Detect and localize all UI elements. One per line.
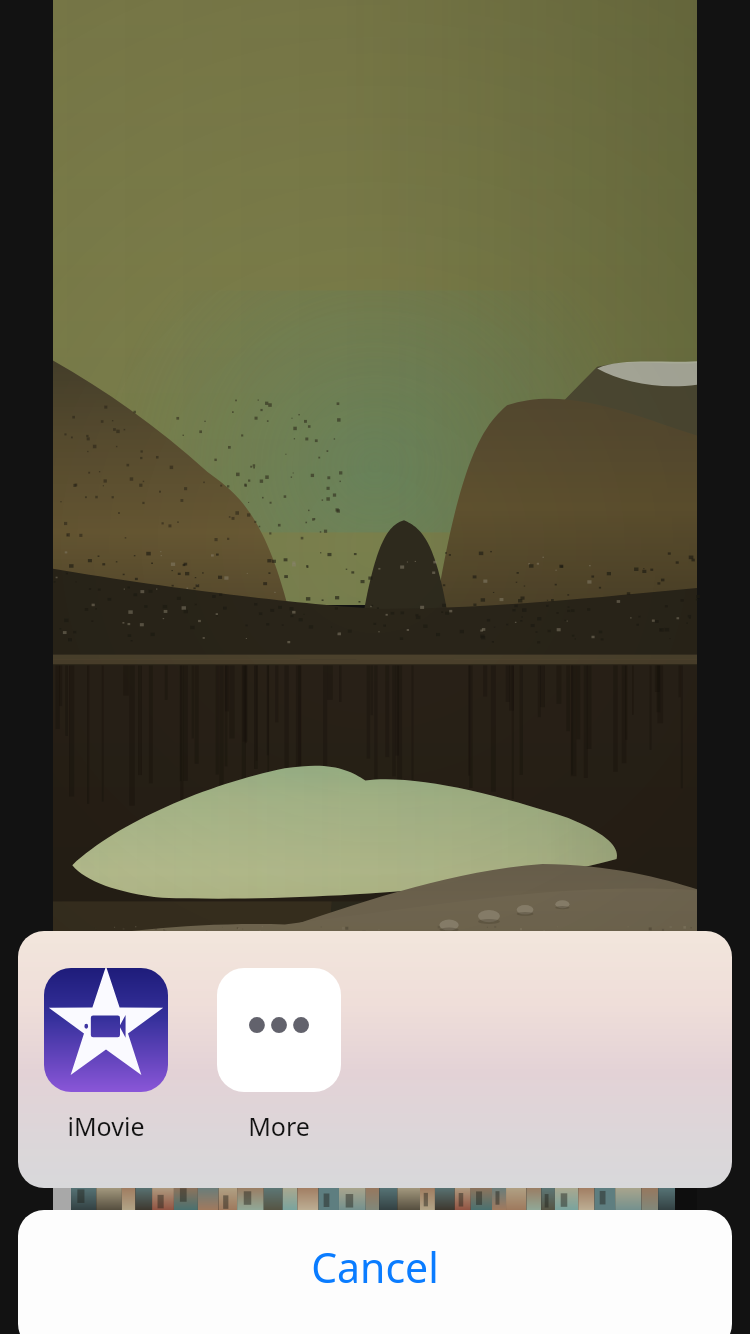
other: iMovie xyxy=(44,968,168,1092)
button[interactable]: Cancel xyxy=(18,1210,732,1334)
button[interactable]: iMovie xyxy=(44,968,168,1143)
staticText: Cancel xyxy=(311,1239,439,1295)
staticText: iMovie xyxy=(67,1109,145,1143)
button[interactable]: More xyxy=(217,968,341,1143)
other: More xyxy=(217,968,341,1092)
staticText: More xyxy=(248,1109,310,1143)
